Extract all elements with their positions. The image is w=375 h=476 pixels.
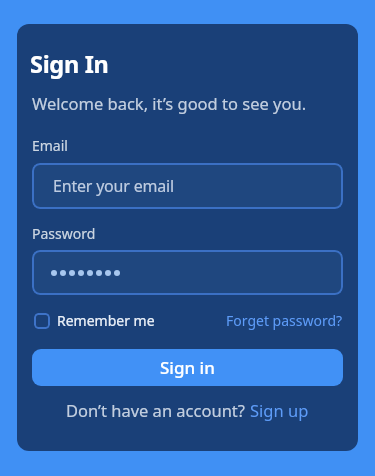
button[interactable] <box>32 250 343 295</box>
staticText: Sign in <box>160 356 215 379</box>
button[interactable]: Sign up <box>250 399 309 421</box>
staticText: Don’t have an account? <box>66 399 250 421</box>
staticText: Enter your email <box>53 175 174 197</box>
staticText: Remember me <box>57 311 155 330</box>
button[interactable]: Sign in <box>32 349 343 386</box>
button[interactable]: Forget password? <box>226 311 343 330</box>
button[interactable]: Enter your email <box>32 163 343 209</box>
staticText: Sign In <box>30 48 109 80</box>
staticText: Welcome back, it’s good to see you. <box>32 92 307 114</box>
staticText: Email <box>32 136 68 155</box>
button[interactable]: Remember me <box>32 311 155 330</box>
staticText: Password <box>32 224 96 243</box>
